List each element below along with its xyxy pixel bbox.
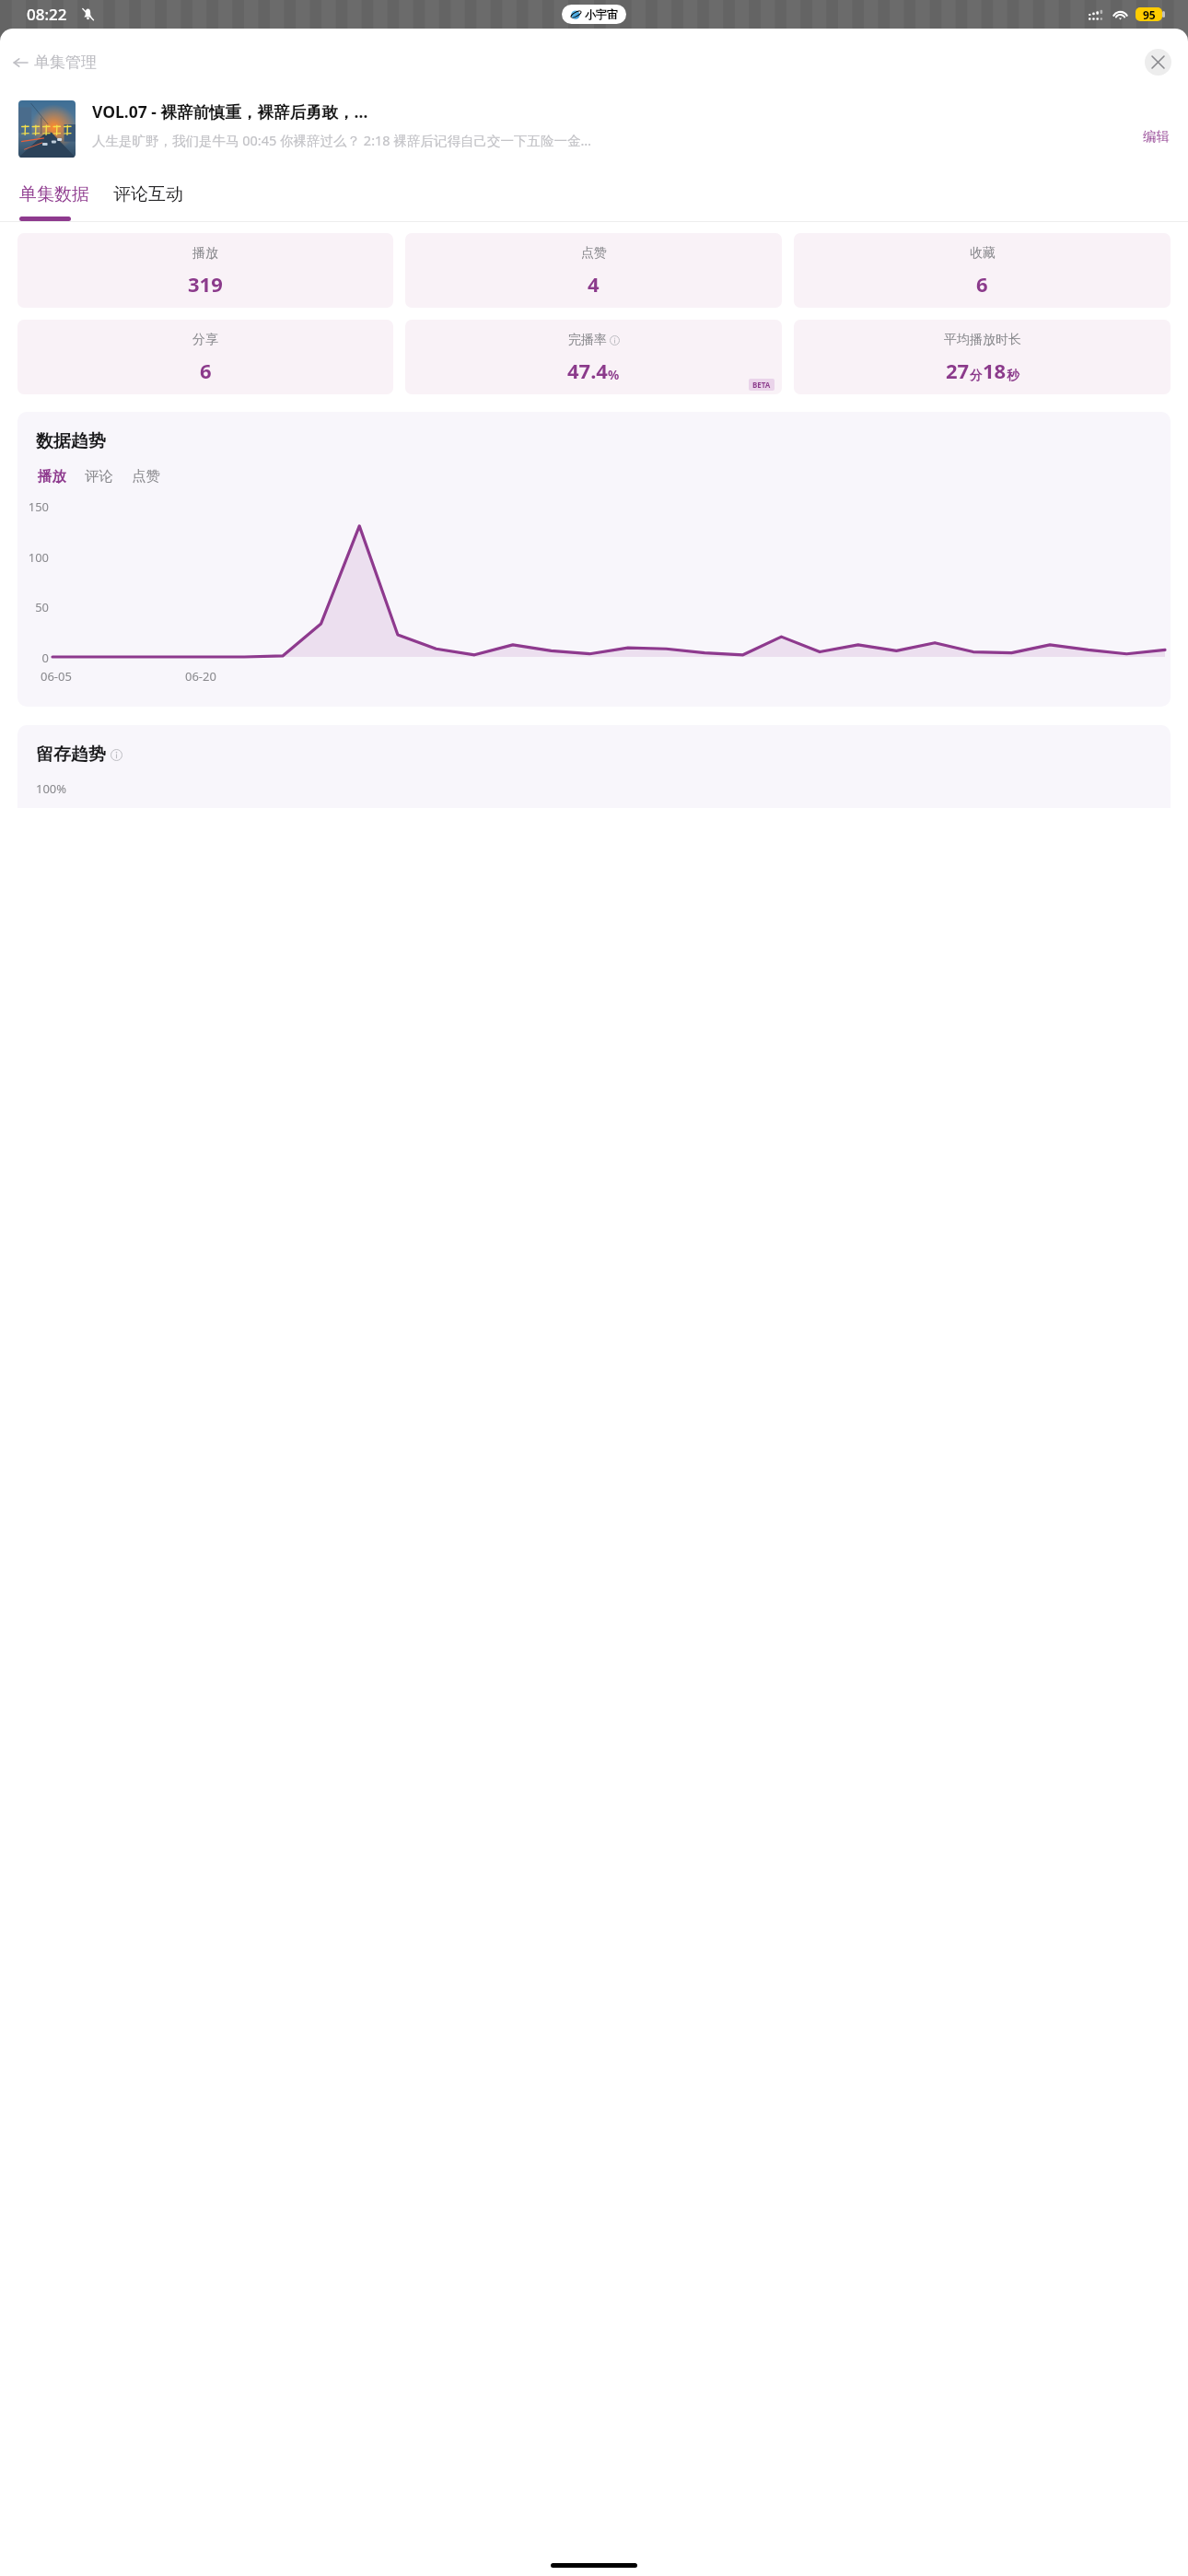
staticText: BETA [752, 380, 771, 390]
button[interactable]: Close [1145, 49, 1171, 76]
staticText: 0 [23, 650, 49, 664]
staticText: 小宇宙 [585, 7, 618, 21]
staticText: 单集数据 [19, 183, 89, 205]
button[interactable]: 单集管理 [9, 49, 100, 76]
staticText: 人生是旷野，我们是牛马 00:45 你裸辞过么？ 2:18 裸辞后记得自己交一下… [92, 131, 591, 149]
staticText: 秒 [1007, 368, 1019, 383]
staticText: 单集管理 [34, 53, 97, 72]
staticText: VOL.07 - 裸辞前慎重，裸辞后勇敢，… [92, 100, 368, 123]
button[interactable]: VOL.07 - 裸辞前慎重，裸辞后勇敢，… [18, 100, 1173, 158]
staticText: 6 [976, 270, 988, 298]
button[interactable]: 完播率 [405, 320, 782, 394]
staticText: 08:22 [27, 4, 67, 25]
button[interactable]: 播放 [17, 233, 393, 308]
staticText: 收藏 [970, 245, 996, 262]
staticText: 编辑 [1143, 128, 1170, 145]
button[interactable]: 单集数据 [18, 181, 90, 207]
button[interactable]: 分享 [17, 320, 393, 394]
staticText: 点赞 [581, 245, 607, 262]
staticText: 点赞 [132, 467, 160, 486]
staticText: 95 [1143, 7, 1156, 21]
staticText: 数据趋势 [36, 430, 106, 452]
staticText: 100% [36, 780, 67, 797]
staticText: 06-05 [41, 668, 72, 685]
button[interactable]: 点赞 [130, 465, 162, 487]
button[interactable]: 平均播放时长 [794, 320, 1171, 394]
staticText: 319 [188, 270, 223, 298]
staticText: 分享 [192, 332, 218, 348]
staticText: 播放 [38, 467, 66, 486]
staticText: 27 [946, 357, 970, 384]
staticText: 评论互动 [113, 183, 183, 205]
staticText: 平均播放时长 [944, 332, 1021, 348]
staticText: 100 [23, 549, 49, 564]
staticText: 18 [983, 357, 1007, 384]
staticText: 播放 [192, 245, 218, 262]
button[interactable]: 评论互动 [112, 181, 184, 207]
staticText: 6 [200, 357, 212, 384]
button[interactable]: 收藏 [794, 233, 1171, 308]
button[interactable]: 评论 [83, 465, 115, 487]
staticText: 47.4 [567, 357, 608, 384]
staticText: 完播率 [568, 332, 607, 348]
staticText: 06-20 [185, 668, 216, 685]
button[interactable]: 编辑 [1139, 126, 1173, 146]
staticText: 4 [588, 270, 600, 298]
button[interactable]: 播放 [36, 465, 68, 487]
staticText: 留存趋势 [36, 744, 106, 766]
staticText: 分 [970, 368, 983, 383]
staticText: % [608, 366, 620, 383]
staticText: 150 [23, 498, 49, 513]
button[interactable]: 点赞 [405, 233, 782, 308]
staticText: 50 [23, 599, 49, 614]
staticText: 评论 [85, 467, 113, 486]
